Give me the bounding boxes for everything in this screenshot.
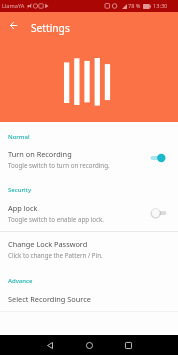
button[interactable]: Back [40,335,60,355]
button[interactable]: App lock [0,200,178,226]
button[interactable]: Select Recording Source [0,291,178,307]
staticText: App lock [8,203,38,213]
staticText: Advance [8,277,33,285]
staticText: Change Lock Password [8,239,88,249]
staticText: Select Recording Source [8,294,91,304]
staticText: 78 % [128,2,141,10]
button[interactable]: Change Lock Password [0,236,178,262]
button[interactable]: Recents [118,335,138,355]
staticText: Click to change the Pattern / Pin. [8,251,103,259]
staticText: Toogle switch to enable app lock. [8,215,104,223]
button[interactable]: Home [79,335,99,355]
staticText: Normal [8,133,30,141]
button[interactable]: Turn on Recording [0,146,178,172]
staticText: Turn on Recording [8,149,72,159]
staticText: Settings [31,21,70,35]
button[interactable]: Switch off [149,205,169,221]
button[interactable]: Back [3,15,23,35]
staticText: Toogle switch to turn on recording. [8,161,110,169]
staticText: 13:30 [153,2,168,10]
staticText: LlamaYA [2,2,25,10]
staticText: Security [8,186,32,194]
button[interactable]: Switch on [148,150,168,166]
